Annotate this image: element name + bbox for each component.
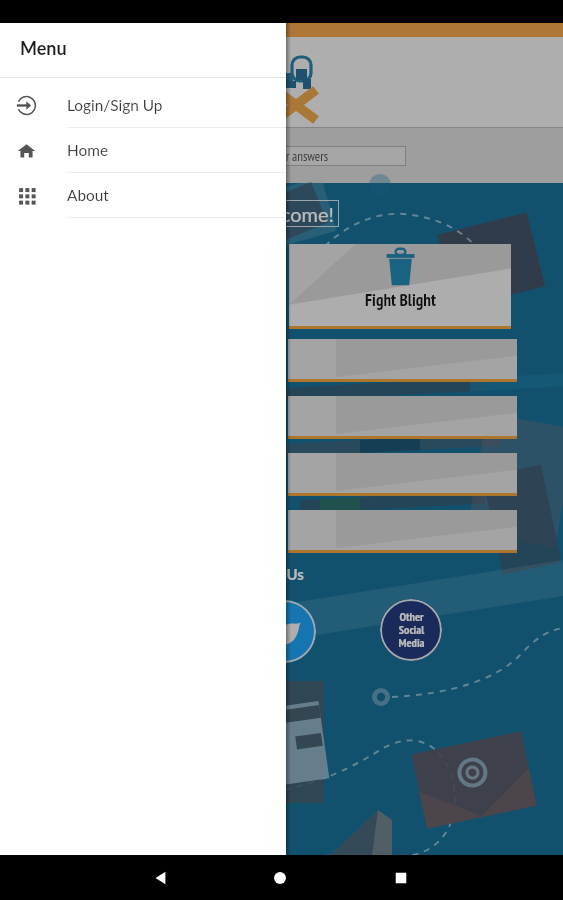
- button[interactable]: Welcome!: [241, 200, 339, 227]
- button[interactable]: [288, 510, 517, 553]
- staticText: Home: [67, 141, 109, 159]
- staticText: Login/Sign Up: [67, 96, 163, 114]
- staticText: Other Social Media: [398, 609, 425, 651]
- button[interactable]: Home: [269, 867, 291, 889]
- staticText: Welcome!: [246, 202, 334, 226]
- button[interactable]: [288, 339, 517, 382]
- button[interactable]: [288, 396, 517, 439]
- staticText: Search for answers: [244, 148, 329, 165]
- staticText: Menu: [20, 37, 67, 59]
- button[interactable]: Fight Blight: [289, 244, 511, 329]
- staticText: Contact Us: [230, 565, 304, 583]
- button[interactable]: Home: [0, 128, 286, 173]
- button[interactable]: Back: [150, 867, 172, 889]
- button[interactable]: About: [0, 173, 286, 218]
- button[interactable]: Login/Sign Up: [0, 83, 286, 128]
- button[interactable]: Twitter: [253, 600, 316, 663]
- button[interactable]: Search for answers: [238, 146, 406, 166]
- button[interactable]: Contact Us: [230, 565, 306, 583]
- staticText: About: [67, 186, 109, 204]
- button[interactable]: Recents: [390, 867, 412, 889]
- staticText: Fight Blight: [365, 289, 436, 311]
- button[interactable]: [288, 453, 517, 496]
- button[interactable]: Other Social Media: [380, 599, 442, 661]
